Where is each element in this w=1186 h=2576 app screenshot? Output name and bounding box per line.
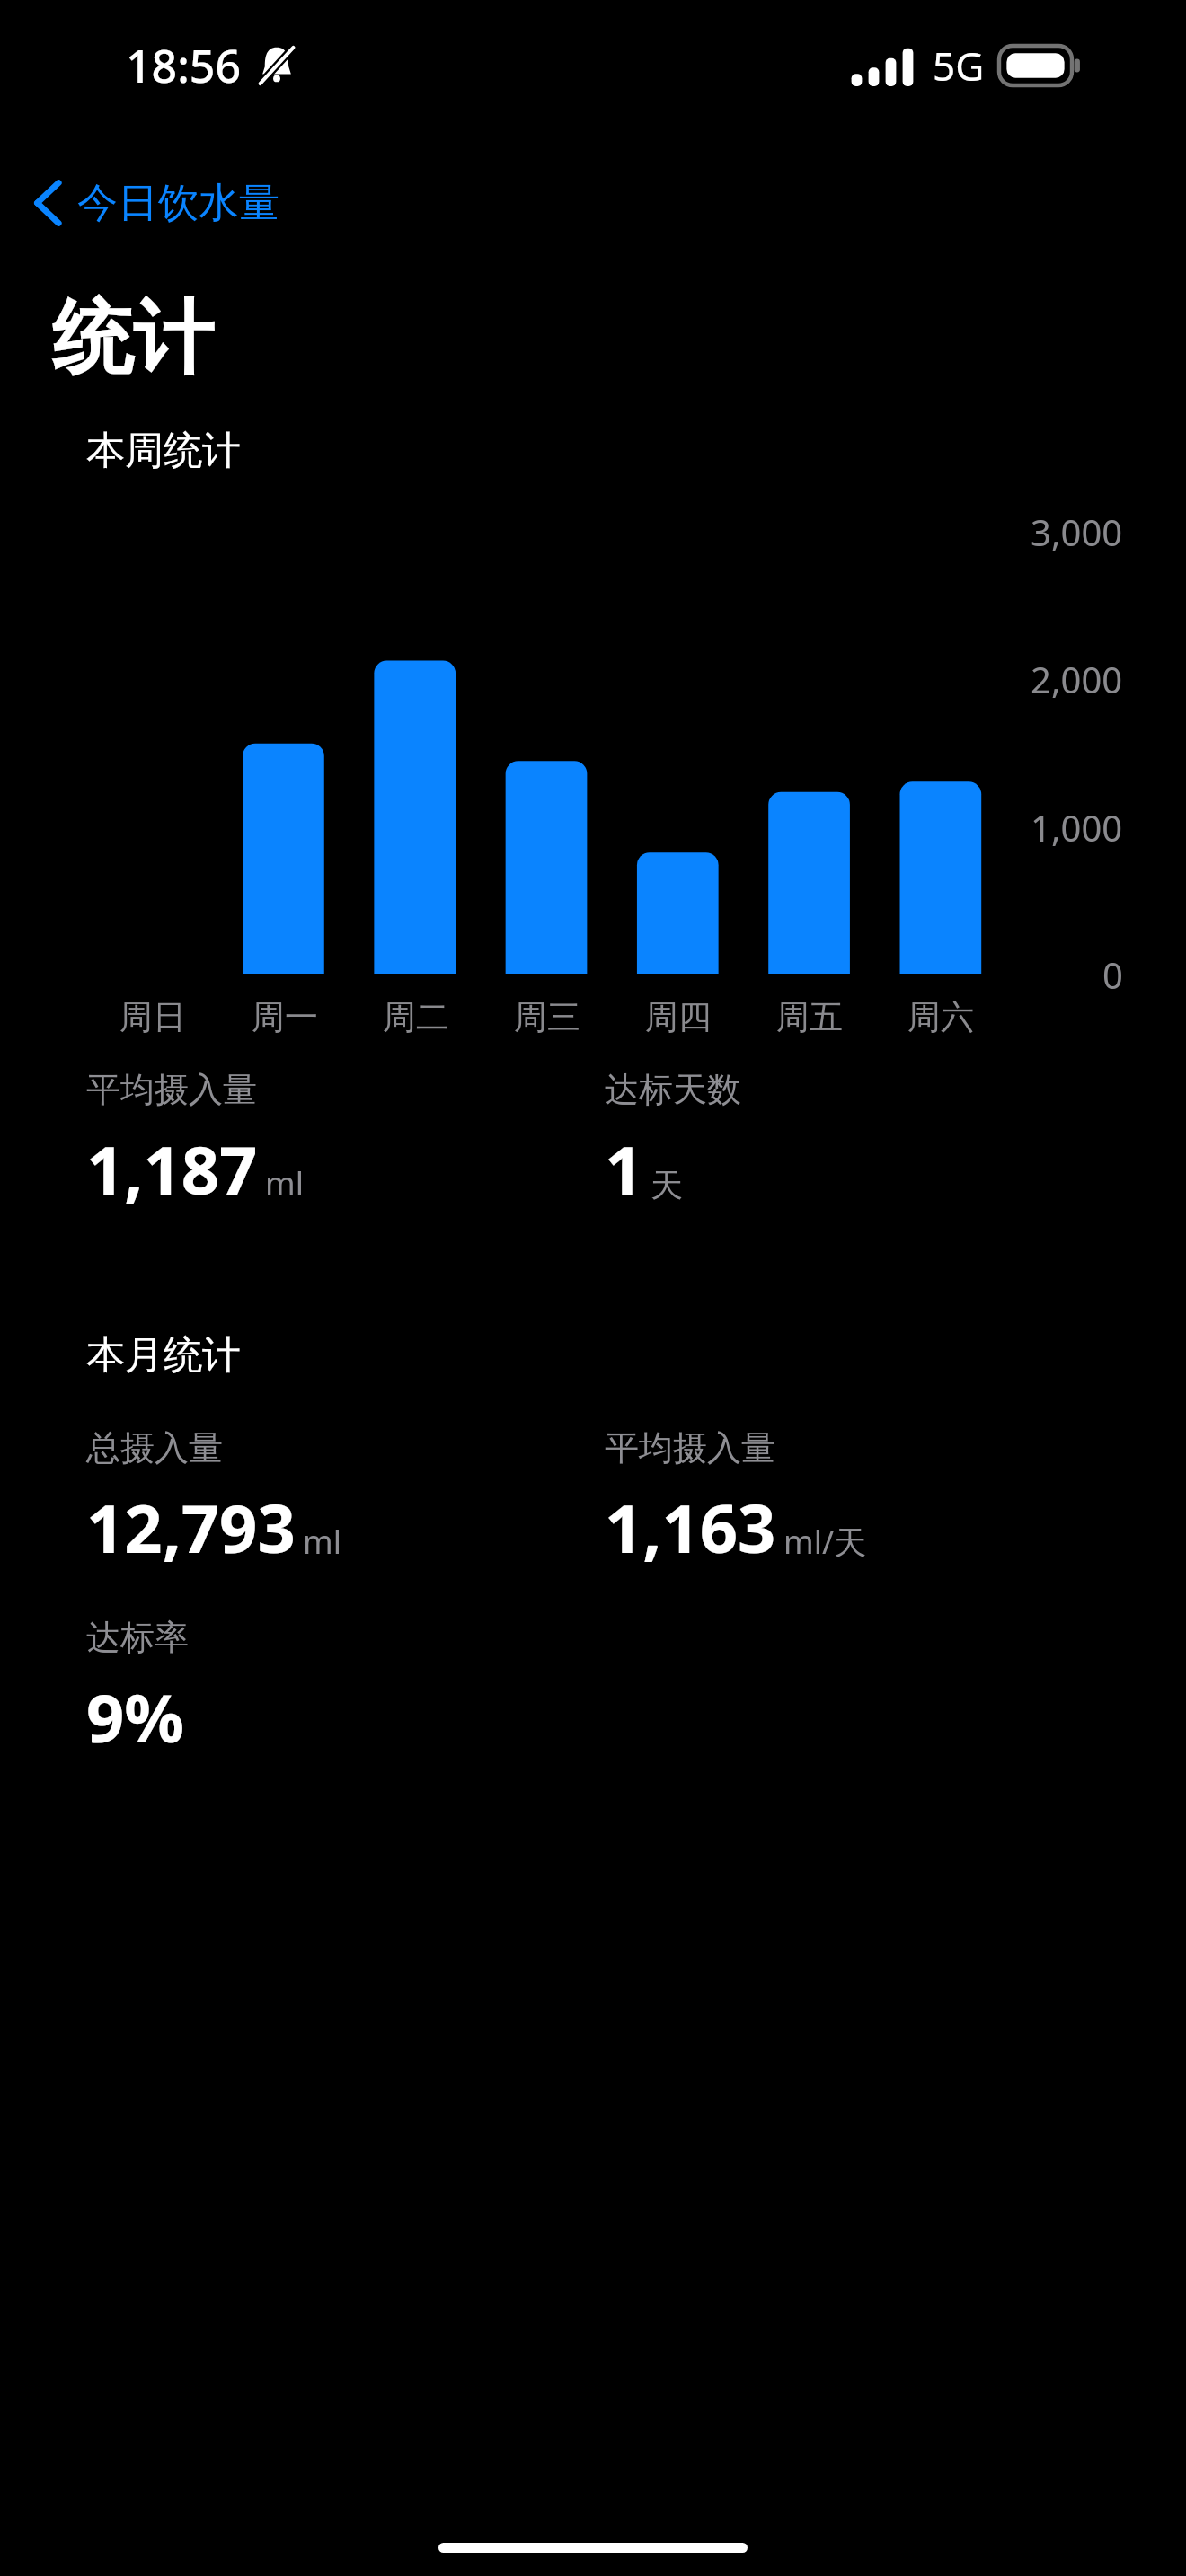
staticText: 平均摄入量 bbox=[86, 1068, 257, 1111]
staticText: 5G bbox=[933, 39, 985, 93]
staticText: 1,000 bbox=[1031, 803, 1123, 851]
staticText: 周四 bbox=[645, 996, 712, 1038]
staticText: 周三 bbox=[514, 996, 580, 1038]
staticText: 18:56 bbox=[126, 35, 241, 96]
staticText: 平均摄入量 bbox=[605, 1426, 775, 1469]
staticText: 本周统计 bbox=[86, 427, 241, 475]
staticText: 2,000 bbox=[1031, 655, 1123, 703]
staticText: 1 bbox=[605, 1124, 643, 1214]
staticText: 达标率 bbox=[86, 1616, 189, 1659]
staticText: 1,187 bbox=[86, 1124, 258, 1214]
staticText: 本月统计 bbox=[86, 1331, 241, 1380]
staticText: 9% bbox=[86, 1672, 185, 1762]
staticText: ml bbox=[303, 1520, 341, 1564]
staticText: 天 bbox=[651, 1165, 683, 1205]
staticText: 周六 bbox=[907, 996, 974, 1038]
staticText: 1,163 bbox=[605, 1482, 776, 1573]
staticText: 今日饮水量 bbox=[77, 178, 279, 229]
staticText: 12,793 bbox=[86, 1482, 296, 1573]
staticText: 周五 bbox=[776, 996, 843, 1038]
staticText: 总摄入量 bbox=[86, 1426, 223, 1469]
staticText: 统计 bbox=[52, 287, 214, 389]
staticText: 周一 bbox=[252, 996, 318, 1038]
staticText: 周二 bbox=[383, 996, 449, 1038]
staticText: 3,000 bbox=[1031, 507, 1123, 556]
staticText: ml bbox=[265, 1161, 304, 1205]
staticText: 达标天数 bbox=[605, 1068, 741, 1111]
staticText: ml/天 bbox=[783, 1520, 867, 1564]
staticText: 周日 bbox=[119, 996, 186, 1038]
button[interactable]: 返回 今日饮水量 bbox=[27, 171, 297, 235]
staticText: 0 bbox=[1102, 950, 1123, 999]
